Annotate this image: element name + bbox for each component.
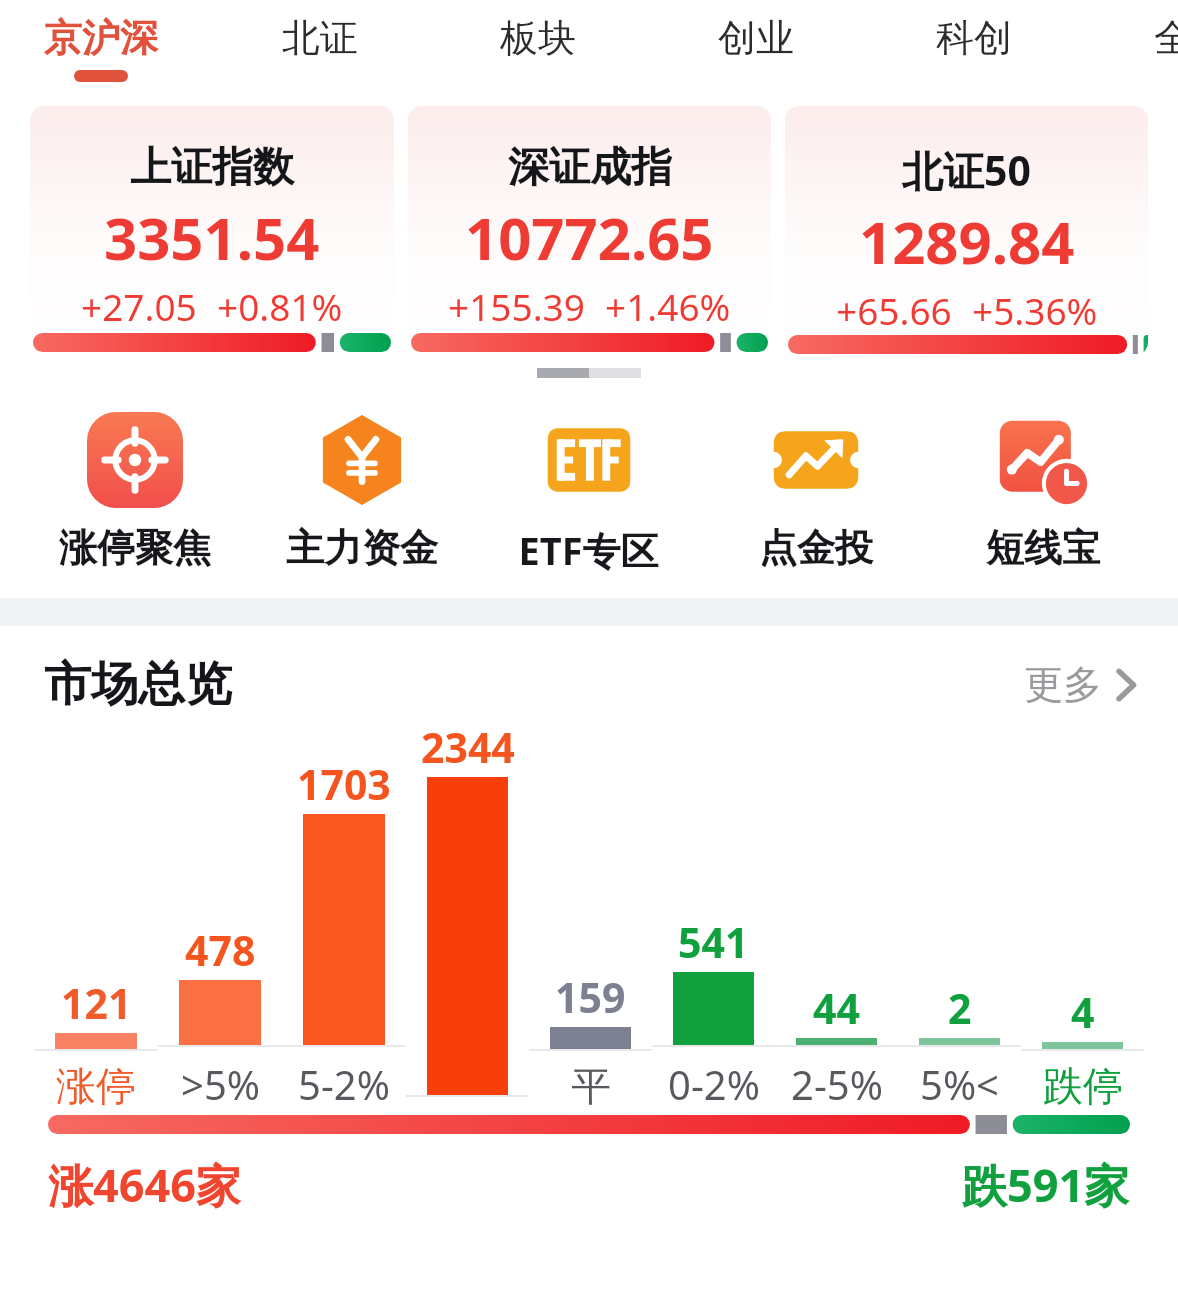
button[interactable]: 科创 — [936, 14, 1012, 62]
staticText: 更多 — [1024, 660, 1102, 709]
button[interactable]: 点金投 — [702, 412, 929, 572]
staticText: 1703 — [297, 756, 391, 812]
staticText: 深证成指 — [508, 142, 672, 194]
staticText: >5% — [181, 1057, 260, 1111]
staticText: 上证指数 — [130, 142, 294, 194]
staticText: 板块 — [500, 14, 576, 62]
staticText: +5.36% — [972, 285, 1098, 335]
staticText: 涨停 — [56, 1061, 136, 1111]
staticText: 点金投 — [759, 524, 873, 572]
staticText: 涨停聚焦 — [59, 524, 211, 572]
staticText: 44 — [813, 980, 860, 1036]
button[interactable]: 涨停聚焦 — [22, 412, 248, 572]
staticText: +1.46% — [605, 281, 731, 331]
staticText: 2344 — [421, 719, 515, 775]
button[interactable]: 更多 — [1018, 654, 1142, 715]
button[interactable]: 京沪深 — [44, 14, 158, 82]
button[interactable]: 创业 — [718, 14, 794, 62]
staticText: 541 — [678, 914, 749, 970]
button[interactable]: 北证 — [282, 14, 358, 62]
staticText: 涨4646家 — [48, 1154, 241, 1215]
staticText: 主力资金 — [286, 524, 438, 572]
button[interactable]: 主力资金 — [248, 412, 475, 572]
staticText: 北证 — [282, 14, 358, 62]
staticText: 科创 — [936, 14, 1012, 62]
button[interactable]: 北证50 — [785, 106, 1148, 356]
staticText: 159 — [555, 969, 626, 1025]
staticText: 2 — [948, 980, 972, 1036]
staticText: 4 — [1071, 984, 1095, 1040]
button[interactable]: 深证成指 — [408, 106, 771, 356]
staticText: 跌停 — [1043, 1061, 1123, 1111]
staticText: 北证50 — [902, 142, 1031, 198]
staticText: +65.66 — [836, 285, 952, 335]
button[interactable]: 板块 — [500, 14, 576, 62]
button[interactable]: ETF专区 — [475, 412, 702, 576]
staticText: 全 — [1154, 14, 1178, 62]
staticText: 短线宝 — [986, 524, 1100, 572]
staticText: 京沪深 — [44, 14, 158, 62]
staticText: 478 — [185, 922, 256, 978]
staticText: 平 — [571, 1061, 611, 1111]
staticText: ETF专区 — [518, 524, 659, 576]
staticText: +0.81% — [217, 281, 343, 331]
staticText: 市场总览 — [44, 655, 232, 714]
staticText: 5-2% — [298, 1057, 390, 1111]
staticText: 10772.65 — [465, 198, 714, 277]
staticText: 2-5% — [791, 1057, 883, 1111]
staticText: 跌591家 — [962, 1154, 1130, 1215]
button[interactable]: 全 — [1154, 14, 1178, 62]
button[interactable]: 短线宝 — [929, 412, 1156, 572]
staticText: 3351.54 — [104, 198, 320, 277]
staticText: 121 — [61, 975, 132, 1031]
button[interactable]: 上证指数 — [30, 106, 394, 356]
staticText: 5%< — [920, 1057, 999, 1111]
staticText: 0-2% — [668, 1057, 760, 1111]
staticText: 创业 — [718, 14, 794, 62]
staticText: +27.05 — [81, 281, 197, 331]
staticText: 1289.84 — [859, 202, 1075, 281]
staticText: +155.39 — [448, 281, 585, 331]
